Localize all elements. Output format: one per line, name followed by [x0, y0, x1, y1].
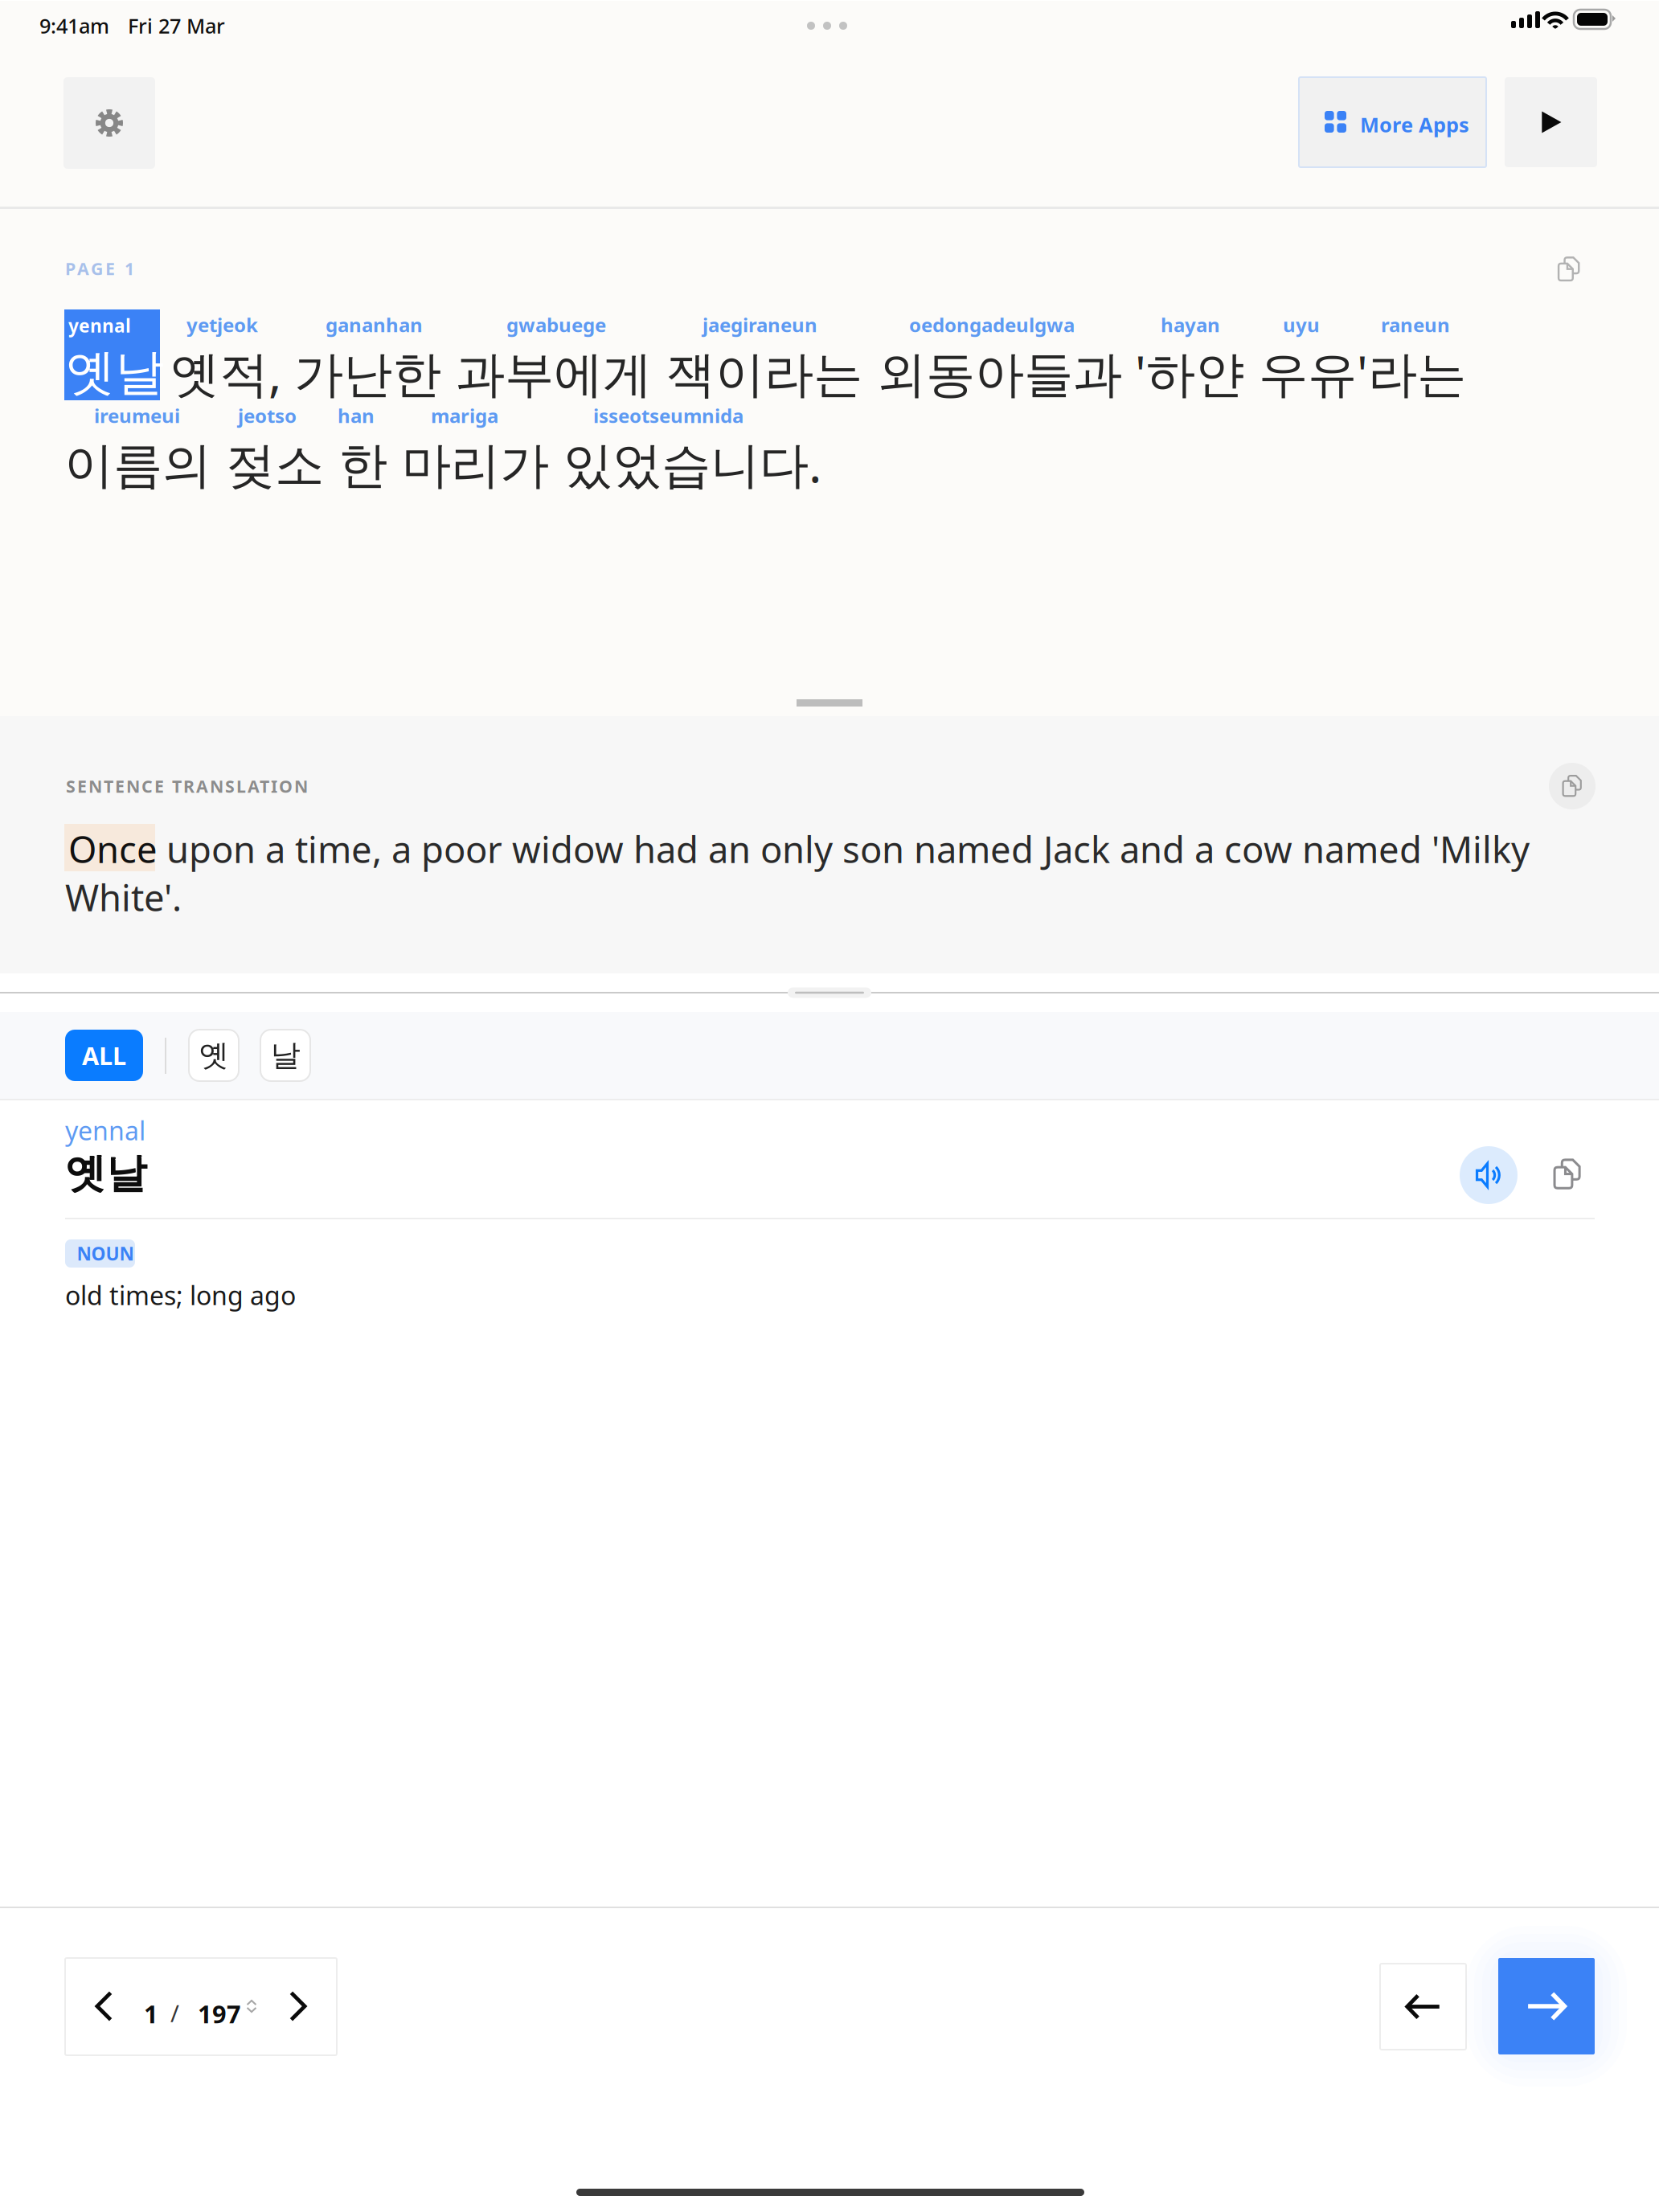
button[interactable]: Back: [1380, 1964, 1466, 2050]
button[interactable]: Next page: [272, 1981, 323, 2032]
staticText: jaegiraneun: [703, 312, 817, 338]
staticText: /: [170, 1997, 179, 2029]
button[interactable]: Previous page: [79, 1981, 130, 2032]
button[interactable]: Copy word: [1545, 1152, 1590, 1197]
button[interactable]: Play pronunciation: [1460, 1146, 1518, 1204]
staticText: yetjeok: [186, 312, 258, 338]
staticText: SENTENCE TRANSLATION: [66, 775, 308, 797]
staticText: Once: [68, 825, 158, 873]
staticText: More Apps: [1360, 111, 1469, 138]
button[interactable]: 옛: [189, 1030, 239, 1081]
staticText: raneun: [1381, 312, 1450, 338]
staticText: 9:41am: [39, 12, 109, 39]
staticText: isseotseumnida: [593, 403, 743, 428]
button[interactable]: Play: [1505, 77, 1597, 167]
staticText: Fri 27 Mar: [128, 12, 225, 39]
staticText: gananhan: [326, 312, 423, 338]
button[interactable]: Copy sentence: [1550, 250, 1588, 289]
staticText: 날: [270, 1037, 300, 1074]
staticText: hayan: [1161, 312, 1220, 338]
button[interactable]: 날: [260, 1030, 310, 1081]
button[interactable]: Next: [1498, 1958, 1595, 2054]
staticText: jeotso: [238, 403, 297, 428]
staticText: 이름의 젖소 한 마리가 있었습니다.: [64, 431, 821, 496]
staticText: 197: [198, 1997, 241, 2030]
staticText: ireumeui: [94, 403, 180, 428]
button[interactable]: ALL: [65, 1030, 143, 1081]
button[interactable]: Copy translation: [1549, 763, 1596, 809]
staticText: upon a time, a poor widow had an only so…: [166, 825, 1530, 873]
staticText: 옛날: [65, 1149, 147, 1199]
staticText: mariga: [431, 403, 498, 428]
staticText: NOUN: [77, 1241, 134, 1266]
staticText: han: [338, 403, 375, 428]
staticText: 옛: [199, 1037, 229, 1074]
staticText: 1: [144, 1997, 158, 2030]
button[interactable]: More Apps: [1299, 77, 1486, 167]
staticText: 옛날: [66, 342, 164, 403]
staticText: gwabuege: [506, 312, 606, 338]
staticText: old times; long ago: [65, 1278, 296, 1312]
staticText: yennal: [68, 313, 131, 338]
staticText: uyu: [1283, 312, 1320, 338]
staticText: yennal: [65, 1113, 145, 1147]
staticText: oedongadeulgwa: [909, 312, 1075, 338]
staticText: ALL: [82, 1039, 126, 1072]
button[interactable]: Page 1 of 197: [136, 1984, 266, 2030]
staticText: PAGE 1: [65, 257, 134, 280]
staticText: White'.: [65, 873, 182, 921]
staticText: 옛적, 가난한 과부에게 잭이라는 외동아들과 '하얀 우유'라는: [170, 340, 1466, 405]
button[interactable]: Settings: [63, 77, 155, 169]
